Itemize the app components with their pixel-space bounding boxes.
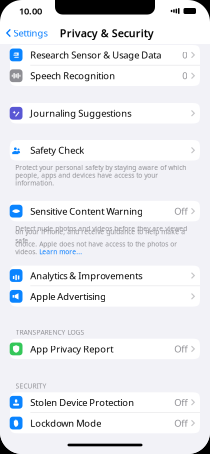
staticText: Lockdown Mode: [30, 417, 101, 429]
staticText: Off: [174, 417, 187, 429]
staticText: choice. Apple does not have access to th…: [15, 239, 177, 248]
staticText: 0: [182, 70, 187, 82]
staticText: Analytics & Improvements: [30, 269, 142, 282]
staticText: people, apps and devices have access to …: [15, 171, 158, 180]
staticText: Off: [174, 396, 187, 408]
staticText: videos.: [15, 247, 39, 256]
staticText: Settings: [13, 27, 47, 39]
staticText: Sensitive Content Warning: [30, 205, 143, 217]
staticText: information.: [15, 179, 54, 187]
staticText: Protect your personal safety by staying …: [15, 163, 186, 172]
staticText: 0: [182, 49, 187, 61]
staticText: Detect nude photos and videos before the…: [15, 224, 187, 233]
button[interactable]: Analytics & Improvements: [10, 266, 200, 286]
button[interactable]: Sensitive Content Warning: [10, 201, 200, 221]
staticText: Off: [174, 343, 187, 355]
button[interactable]: Journaling Suggestions: [10, 103, 200, 123]
staticText: Privacy & Security: [60, 26, 154, 40]
staticText: 10.00: [19, 5, 42, 17]
button[interactable]: Speech Recognition: [10, 65, 200, 86]
staticText: TRANSPARENCY LOGS: [15, 328, 84, 337]
button[interactable]: Research Sensor & Usage Data: [10, 45, 200, 65]
button[interactable]: Safety Check: [10, 140, 200, 160]
staticText: SECURITY: [15, 381, 46, 390]
staticText: Apple Advertising: [30, 290, 106, 303]
staticText: Off: [174, 205, 187, 217]
staticText: Stolen Device Protection: [30, 396, 134, 408]
staticText: Learn more...: [39, 247, 82, 256]
button[interactable]: Stolen Device Protection: [10, 392, 200, 413]
staticText: Research Sensor & Usage Data: [30, 49, 161, 61]
button[interactable]: Apple Advertising: [10, 286, 200, 307]
staticText: Journaling Suggestions: [30, 107, 131, 119]
staticText: App Privacy Report: [30, 343, 113, 355]
button[interactable]: Learn more...: [39, 247, 82, 256]
staticText: Speech Recognition: [30, 70, 115, 82]
button[interactable]: Settings: [0, 22, 47, 44]
staticText: Safety Check: [30, 144, 84, 156]
button[interactable]: Lockdown Mode: [10, 413, 200, 433]
staticText: on your iPhone, and receive guidance to …: [15, 227, 185, 245]
button[interactable]: App Privacy Report: [10, 339, 200, 359]
